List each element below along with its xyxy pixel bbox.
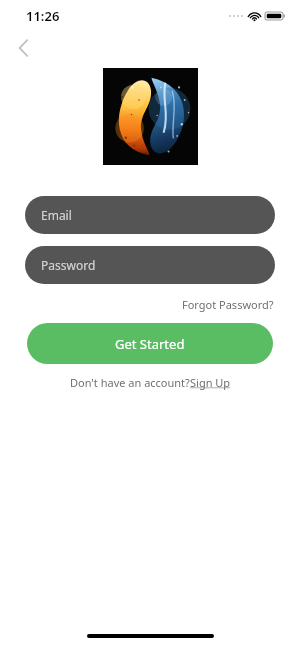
staticText: Password <box>41 257 96 273</box>
button[interactable]: Forgot Password? <box>180 295 276 314</box>
staticText: Forgot Password? <box>182 297 274 312</box>
button[interactable]: Email <box>25 196 275 234</box>
staticText: 11:26 <box>26 7 60 25</box>
staticText: Don't have an account? <box>70 375 190 390</box>
button[interactable]: Get Started <box>27 323 273 364</box>
button[interactable]: Password <box>25 246 275 284</box>
staticText: Sign Up <box>190 375 231 390</box>
staticText: Get Started <box>115 335 185 353</box>
button[interactable]: Back <box>8 33 38 63</box>
staticText: Email <box>41 207 72 223</box>
button[interactable]: Sign Up <box>190 375 231 390</box>
